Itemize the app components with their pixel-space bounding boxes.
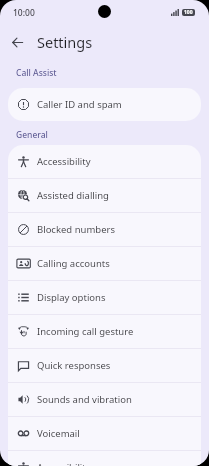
staticText: Call Assist (16, 67, 57, 79)
button[interactable]: Quick responses (8, 349, 201, 382)
button[interactable]: Blocked numbers (8, 213, 201, 246)
button[interactable]: Voicemail (8, 417, 201, 450)
staticText: 10:00 (13, 7, 35, 19)
staticText: General (16, 129, 48, 141)
staticText: Incoming call gesture (37, 325, 134, 338)
staticText: Accessibility (37, 155, 91, 168)
staticText: Quick responses (37, 359, 111, 372)
staticText: Blocked numbers (37, 223, 115, 236)
button[interactable]: Accessibility (8, 451, 201, 466)
staticText: Display options (37, 291, 106, 304)
button[interactable]: Back (6, 31, 28, 53)
staticText: Caller ID and spam (37, 98, 122, 111)
staticText: 100 (184, 9, 193, 16)
staticText: Assisted dialling (37, 189, 109, 202)
button[interactable]: Calling accounts (8, 247, 201, 280)
button[interactable]: Accessibility (8, 145, 201, 178)
button[interactable]: Incoming call gesture (8, 315, 201, 348)
button[interactable]: Display options (8, 281, 201, 314)
button[interactable]: Sounds and vibration (8, 383, 201, 416)
button[interactable]: Assisted dialling (8, 179, 201, 212)
staticText: Calling accounts (37, 257, 110, 270)
staticText: Settings (37, 32, 93, 52)
staticText: Voicemail (37, 427, 80, 440)
button[interactable]: Caller ID and spam (8, 88, 201, 121)
staticText: Accessibility (37, 461, 91, 466)
staticText: Sounds and vibration (37, 393, 132, 406)
